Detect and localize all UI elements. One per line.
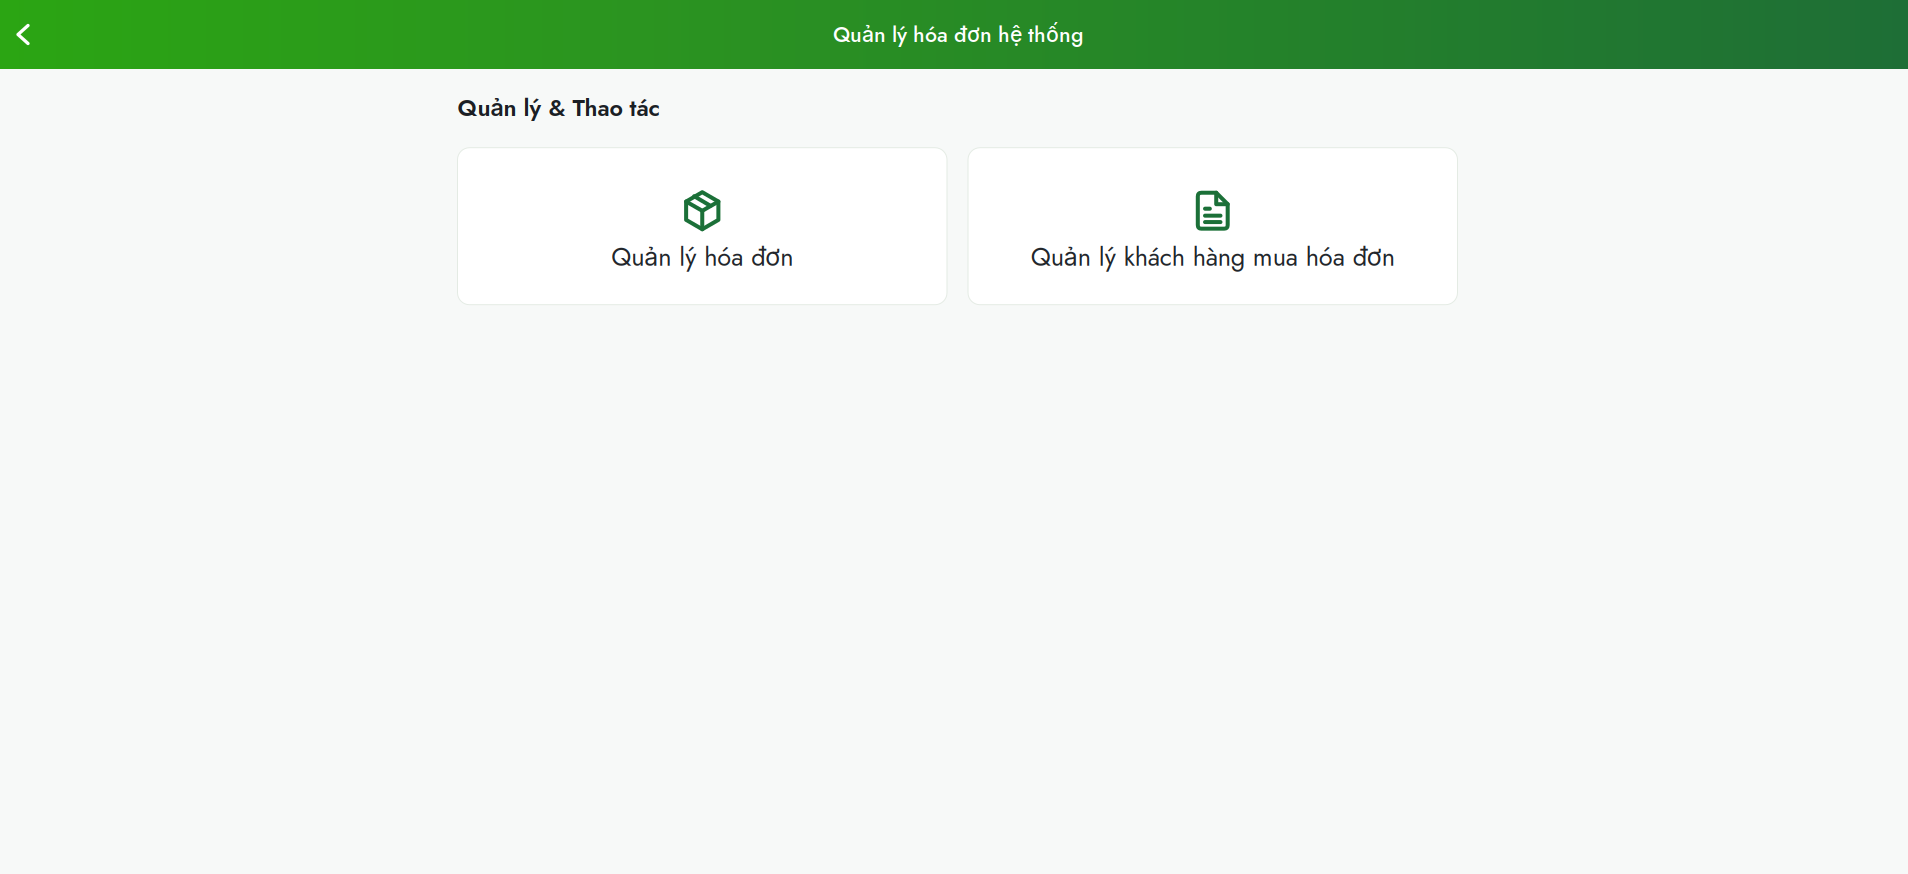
button[interactable]: Quản lý khách hàng mua hóa đơn: [968, 148, 1457, 305]
button[interactable]: Back: [0, 11, 46, 57]
staticText: Quản lý & Thao tác: [457, 91, 659, 125]
staticText: Quản lý hóa đơn hệ thống: [833, 19, 1084, 50]
button[interactable]: Quản lý hóa đơn: [457, 148, 947, 305]
staticText: Quản lý khách hàng mua hóa đơn: [1031, 239, 1395, 275]
staticText: Quản lý hóa đơn: [611, 239, 793, 275]
